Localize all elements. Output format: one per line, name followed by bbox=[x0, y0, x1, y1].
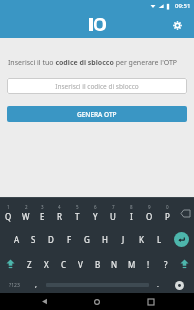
button[interactable]: 0 bbox=[158, 202, 176, 224]
button[interactable]: Voice input bbox=[165, 277, 194, 293]
staticText: U bbox=[110, 211, 116, 222]
button[interactable]: B bbox=[89, 254, 106, 274]
button[interactable]: 1 bbox=[0, 202, 17, 224]
staticText: E bbox=[40, 211, 45, 222]
staticText: GENERA OTP bbox=[77, 110, 117, 119]
button[interactable]: Backspace bbox=[176, 202, 194, 224]
button[interactable]: Space bbox=[43, 277, 151, 293]
button[interactable]: L bbox=[150, 229, 168, 249]
button[interactable]: N bbox=[106, 254, 123, 274]
staticText: 8 bbox=[130, 204, 133, 210]
staticText: Y bbox=[93, 211, 98, 222]
staticText: , bbox=[35, 280, 37, 290]
button[interactable]: D bbox=[42, 229, 60, 249]
button[interactable]: 5 bbox=[68, 202, 86, 224]
staticText: B bbox=[95, 259, 101, 270]
staticText: W bbox=[22, 211, 30, 222]
staticText: 0 bbox=[166, 204, 169, 210]
staticText: N bbox=[111, 259, 118, 270]
button[interactable]: Inserisci il codice di sblocco bbox=[7, 78, 187, 94]
staticText: R bbox=[57, 211, 62, 222]
staticText: 7 bbox=[112, 204, 115, 210]
button[interactable]: 6 bbox=[86, 202, 104, 224]
staticText: ?123 bbox=[9, 282, 20, 289]
staticText: Z bbox=[27, 259, 32, 270]
staticText: D bbox=[48, 234, 54, 245]
staticText: F bbox=[67, 234, 72, 245]
button[interactable]: ! bbox=[140, 254, 157, 274]
button[interactable]: 4 bbox=[51, 202, 68, 224]
staticText: 5 bbox=[76, 204, 79, 210]
staticText: Q bbox=[5, 211, 12, 222]
staticText: 9 bbox=[148, 204, 151, 210]
button[interactable]: V bbox=[72, 254, 89, 274]
button[interactable]: M bbox=[123, 254, 140, 274]
staticText: 09:51 bbox=[175, 2, 191, 10]
button[interactable]: GENERA OTP bbox=[7, 106, 187, 122]
staticText: I bbox=[130, 211, 133, 222]
staticText: K bbox=[139, 234, 144, 245]
button[interactable]: C bbox=[55, 254, 72, 274]
staticText: 2 bbox=[25, 204, 28, 210]
staticText: G bbox=[84, 234, 90, 245]
staticText: J bbox=[122, 234, 125, 245]
staticText: 1 bbox=[7, 204, 10, 210]
staticText: . bbox=[157, 280, 159, 290]
button[interactable]: 9 bbox=[140, 202, 158, 224]
staticText: 4 bbox=[58, 204, 61, 210]
staticText: O bbox=[146, 211, 153, 222]
button[interactable]: Enter bbox=[168, 229, 194, 249]
button[interactable]: Shift bbox=[0, 254, 21, 274]
staticText: Inserisci il tuo codice di sblocco per g… bbox=[8, 58, 178, 68]
staticText: ! bbox=[147, 259, 150, 270]
staticText: T bbox=[75, 211, 80, 222]
button[interactable]: G bbox=[78, 229, 96, 249]
staticText: 3 bbox=[41, 204, 44, 210]
button[interactable]: F bbox=[60, 229, 78, 249]
staticText: ? bbox=[164, 259, 168, 270]
staticText: L bbox=[157, 234, 162, 245]
button[interactable]: A bbox=[8, 229, 25, 249]
staticText: C bbox=[61, 259, 67, 270]
button[interactable]: Z bbox=[21, 254, 38, 274]
button[interactable]: Home bbox=[87, 293, 107, 310]
button[interactable]: Recents bbox=[141, 293, 161, 310]
button[interactable]: , bbox=[29, 277, 43, 293]
button[interactable]: ?123 bbox=[0, 277, 29, 293]
button[interactable]: X bbox=[38, 254, 55, 274]
button[interactable]: Settings bbox=[168, 16, 186, 34]
button[interactable]: K bbox=[132, 229, 150, 249]
staticText: 6 bbox=[94, 204, 97, 210]
button[interactable]: S bbox=[25, 229, 42, 249]
staticText: H bbox=[102, 234, 108, 245]
button[interactable]: Shift bbox=[174, 254, 194, 274]
button[interactable]: 8 bbox=[122, 202, 140, 224]
staticText: S bbox=[31, 234, 36, 245]
staticText: V bbox=[78, 259, 83, 270]
staticText: M bbox=[128, 259, 136, 270]
button[interactable]: 7 bbox=[104, 202, 122, 224]
staticText: X bbox=[44, 259, 49, 270]
button[interactable]: Back bbox=[34, 293, 54, 310]
button[interactable]: . bbox=[151, 277, 165, 293]
button[interactable]: ? bbox=[157, 254, 174, 274]
button[interactable]: H bbox=[96, 229, 114, 249]
button[interactable]: 3 bbox=[34, 202, 51, 224]
staticText: Inserisci il codice di sblocco bbox=[55, 82, 139, 91]
staticText: A bbox=[14, 234, 20, 245]
button[interactable]: 2 bbox=[17, 202, 34, 224]
button[interactable]: J bbox=[114, 229, 132, 249]
staticText: P bbox=[165, 211, 170, 222]
